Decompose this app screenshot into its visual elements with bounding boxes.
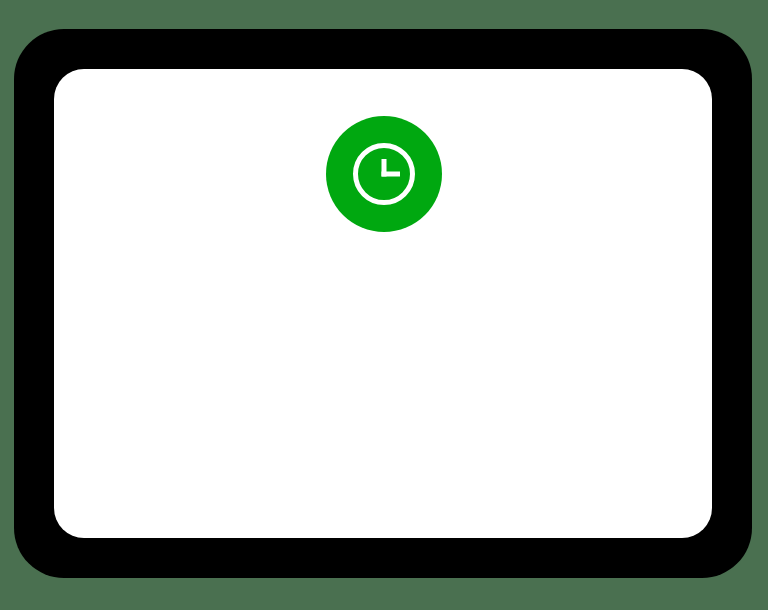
button[interactable]: Clock xyxy=(326,116,442,232)
